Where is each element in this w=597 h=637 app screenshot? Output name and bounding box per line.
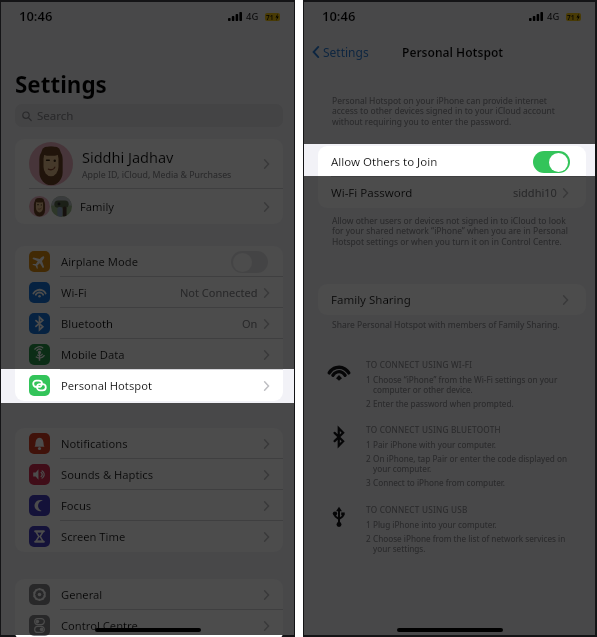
- staticText: Personal Hotspot on your iPhone can prov…: [332, 95, 570, 128]
- staticText: Settings: [323, 44, 369, 60]
- staticText: Personal Hotspot: [402, 44, 504, 60]
- staticText: Notifications: [61, 436, 128, 451]
- staticText: On: [242, 316, 258, 331]
- button[interactable]: Notifications: [15, 428, 283, 459]
- staticText: Share Personal Hotspot with members of F…: [332, 319, 560, 331]
- staticText: General: [61, 587, 103, 602]
- staticText: Focus: [61, 498, 92, 513]
- staticText: Control Centre: [61, 618, 138, 633]
- staticText: Pair iPhone with your computer.: [373, 439, 570, 450]
- button[interactable]: Focus: [15, 490, 283, 521]
- staticText: Choose “iPhone” from the Wi-Fi settings …: [373, 374, 570, 395]
- staticText: Bluetooth: [61, 316, 113, 331]
- staticText: 1: [366, 519, 373, 530]
- button[interactable]: Wi-Fi Password: [318, 177, 586, 208]
- staticText: Plug iPhone into your computer.: [373, 519, 570, 530]
- staticText: 10:46: [19, 7, 53, 25]
- staticText: 2: [366, 533, 373, 544]
- button[interactable]: Family Sharing: [331, 284, 568, 315]
- staticText: 71: [266, 13, 274, 21]
- button[interactable]: Mobile Data: [15, 339, 283, 370]
- staticText: siddhi10: [513, 185, 557, 200]
- staticText: Choose iPhone from the list of network s…: [373, 533, 570, 554]
- staticText: Connect to iPhone from computer.: [373, 477, 570, 488]
- button[interactable]: Turn off: [533, 151, 570, 173]
- staticText: Enter the password when prompted.: [373, 398, 570, 409]
- staticText: Search: [37, 108, 74, 124]
- staticText: 3: [366, 477, 373, 488]
- button[interactable]: Sounds & Haptics: [15, 459, 283, 490]
- button[interactable]: Search: [15, 104, 283, 127]
- button[interactable]: Family: [15, 189, 283, 224]
- button[interactable]: Wi-Fi: [15, 277, 283, 308]
- staticText: 4G: [246, 10, 259, 23]
- staticText: Apple ID, iCloud, Media & Purchases: [82, 169, 232, 181]
- staticText: Mobile Data: [61, 347, 125, 362]
- staticText: Wi-Fi Password: [331, 185, 413, 201]
- button[interactable]: Personal Hotspot: [15, 370, 283, 401]
- staticText: 2: [366, 453, 373, 464]
- button[interactable]: Bluetooth: [15, 308, 283, 339]
- button[interactable]: Screen Time: [15, 521, 283, 552]
- button[interactable]: General: [15, 579, 283, 610]
- staticText: Siddhi Jadhav: [82, 147, 174, 167]
- staticText: Allow other users or devices not signed …: [332, 215, 570, 248]
- button[interactable]: Airplane Mode: [15, 246, 283, 277]
- staticText: Personal Hotspot: [61, 378, 152, 393]
- staticText: 4G: [547, 10, 560, 23]
- staticText: 1: [366, 374, 373, 385]
- staticText: TO CONNECT USING WI-FI: [366, 359, 473, 370]
- button[interactable]: Siddhi Jadhav: [15, 139, 283, 189]
- staticText: 71: [567, 13, 575, 21]
- staticText: Wi-Fi: [61, 285, 87, 300]
- staticText: 2: [366, 398, 373, 409]
- staticText: Sounds & Haptics: [61, 467, 154, 482]
- staticText: 10:46: [322, 7, 356, 25]
- staticText: Settings: [15, 69, 107, 100]
- staticText: Family: [80, 199, 115, 214]
- staticText: Family Sharing: [331, 292, 411, 308]
- button[interactable]: Turn on: [231, 251, 268, 273]
- button[interactable]: Allow Others to Join: [318, 146, 586, 177]
- button[interactable]: Settings: [309, 40, 373, 64]
- staticText: Screen Time: [61, 529, 126, 544]
- staticText: Not Connected: [180, 285, 258, 300]
- button[interactable]: Control Centre: [15, 610, 283, 637]
- staticText: TO CONNECT USING BLUETOOTH: [366, 424, 501, 435]
- staticText: Allow Others to Join: [331, 154, 438, 170]
- staticText: On iPhone, tap Pair or enter the code di…: [373, 453, 570, 474]
- staticText: TO CONNECT USING USB: [366, 504, 468, 515]
- staticText: Airplane Mode: [61, 254, 138, 269]
- staticText: 1: [366, 439, 373, 450]
